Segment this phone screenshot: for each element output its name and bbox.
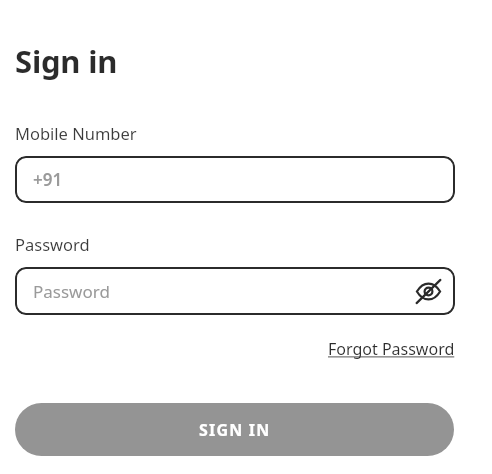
button[interactable]: Forgot Password — [328, 338, 455, 360]
staticText: SIGN IN — [199, 419, 271, 441]
staticText: Password — [33, 280, 410, 303]
button[interactable]: Password — [15, 267, 455, 315]
staticText: Forgot Password — [328, 338, 455, 360]
staticText: Sign in — [15, 40, 118, 82]
staticText: Password — [15, 233, 90, 255]
button[interactable]: SIGN IN — [15, 403, 454, 456]
button[interactable]: Show password — [410, 273, 446, 309]
staticText: Mobile Number — [15, 122, 137, 144]
button[interactable]: +91 — [15, 156, 455, 203]
staticText: +91 — [33, 168, 63, 191]
